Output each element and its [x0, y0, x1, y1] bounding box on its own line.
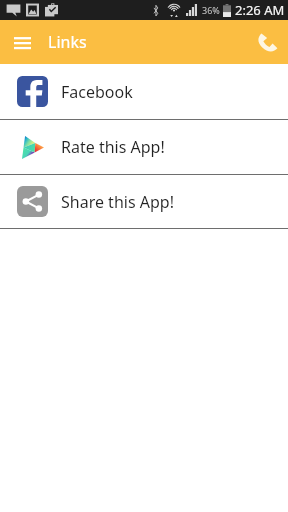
button[interactable]: Open navigation drawer — [0, 20, 44, 64]
button[interactable]: Facebook — [0, 64, 288, 119]
staticText: Facebook — [61, 81, 133, 103]
staticText: Share this App! — [61, 191, 174, 213]
staticText: Links — [48, 31, 87, 53]
staticText: 36% — [202, 4, 220, 16]
button[interactable]: Share this App! — [0, 175, 288, 228]
button[interactable]: Rate this App! — [0, 120, 288, 174]
staticText: 2:26 AM — [235, 1, 285, 19]
staticText: Rate this App! — [61, 136, 165, 158]
button[interactable]: Call — [244, 20, 288, 64]
